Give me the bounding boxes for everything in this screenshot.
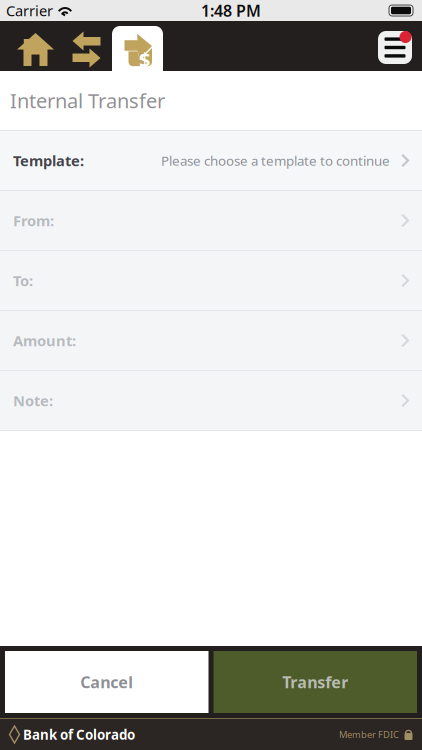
staticText: Note: <box>13 391 53 410</box>
button[interactable]: Amount: <box>0 311 422 370</box>
button[interactable]: Template: <box>0 131 422 190</box>
staticText: Carrier <box>6 1 53 20</box>
button[interactable]: From: <box>0 191 422 250</box>
button[interactable]: Cancel <box>5 651 208 713</box>
button[interactable]: Home <box>10 21 61 71</box>
staticText: Bank of Colorado <box>23 726 135 743</box>
staticText: $ <box>139 46 150 73</box>
staticText: From: <box>13 211 54 230</box>
staticText: Internal Transfer <box>10 87 165 114</box>
staticText: To: <box>13 271 33 290</box>
staticText: 1:48 PM <box>201 0 261 21</box>
button[interactable]: Menu <box>378 31 412 64</box>
staticText: Cancel <box>80 671 133 693</box>
button[interactable]: Transfer <box>213 651 417 713</box>
staticText: Transfer <box>282 671 348 693</box>
staticText: Template: <box>13 151 84 170</box>
button[interactable]: Transfers <box>61 21 112 71</box>
staticText: Member FDIC <box>339 728 399 741</box>
button[interactable]: To: <box>0 251 422 310</box>
staticText: Please choose a template to continue <box>161 152 390 169</box>
button[interactable]: Note: <box>0 371 422 430</box>
button[interactable]: Internal Transfer <box>112 21 163 71</box>
staticText: Amount: <box>13 331 76 350</box>
